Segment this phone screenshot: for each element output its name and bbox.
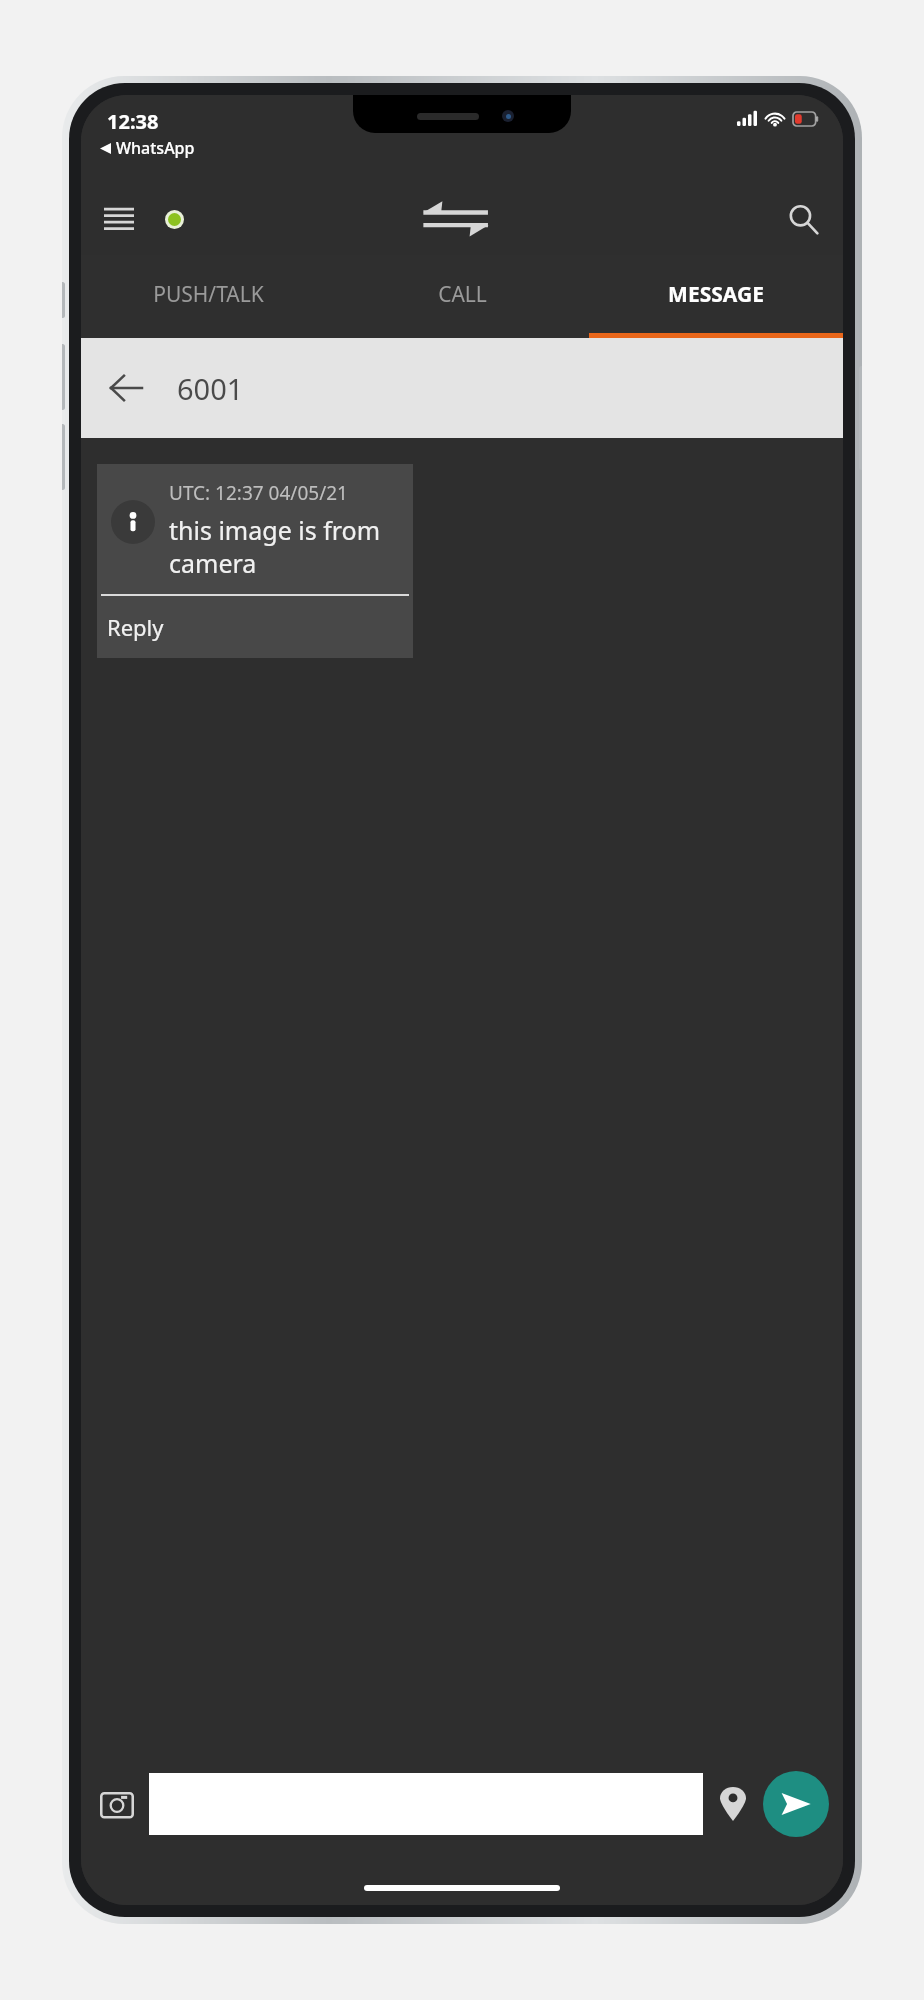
button[interactable]: Back: [97, 359, 155, 417]
button[interactable]: Reply: [97, 596, 413, 658]
button[interactable]: UTC: 12:37 04/05/21: [97, 464, 413, 658]
button[interactable]: Send: [763, 1771, 829, 1837]
button[interactable]: MESSAGE: [589, 255, 843, 333]
staticText: UTC: 12:37 04/05/21: [169, 480, 348, 506]
staticText: WhatsApp: [116, 137, 195, 159]
staticText: 12:38: [107, 108, 159, 135]
staticText: this image is from camera: [169, 513, 401, 580]
staticText: Reply: [107, 612, 164, 642]
staticText: MESSAGE: [668, 280, 764, 309]
button[interactable]: WhatsApp: [100, 137, 195, 159]
button[interactable]: Location: [709, 1780, 757, 1828]
staticText: 6001: [177, 369, 244, 408]
button[interactable]: Camera: [91, 1778, 143, 1830]
staticText: CALL: [438, 280, 487, 309]
button[interactable]: Menu: [91, 191, 147, 247]
button[interactable]: Connection status: [155, 200, 193, 238]
button[interactable]: Transfer: [414, 195, 498, 243]
button[interactable]: CALL: [335, 255, 589, 333]
staticText: PUSH/TALK: [153, 280, 264, 309]
button[interactable]: Search: [775, 191, 831, 247]
button[interactable]: PUSH/TALK: [81, 255, 335, 333]
